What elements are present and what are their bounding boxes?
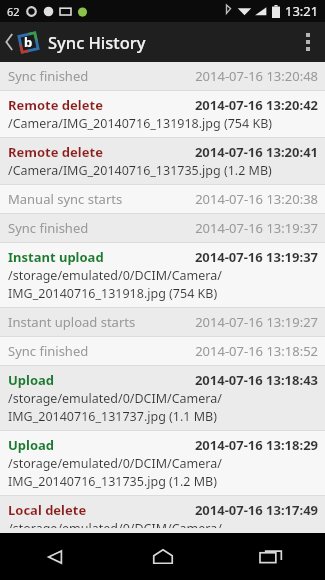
staticText: /storage/emulated/0/DCIM/Camera/: [8, 390, 222, 407]
staticText: 2014-07-16 13:17:49: [194, 501, 318, 519]
button[interactable]: Remote delete: [0, 138, 325, 184]
staticText: /storage/emulated/0/DCIM/Camera/: [8, 520, 222, 528]
staticText: /storage/emulated/0/DCIM/Camera/: [8, 267, 222, 284]
staticText: /Camera/IMG_20140716_131735.jpg (1.2 MB): [8, 162, 272, 179]
staticText: Manual sync starts: [8, 190, 123, 208]
button[interactable]: Instant upload starts: [0, 308, 325, 336]
staticText: IMG_20140716_131737.jpg (1.1 MB): [8, 408, 217, 425]
staticText: IMG_20140716_131735.jpg (1.2 MB): [8, 473, 217, 490]
staticText: 2014-07-16 13:20:42: [194, 96, 318, 114]
staticText: Sync finished: [8, 342, 89, 360]
staticText: Upload: [8, 371, 55, 389]
button[interactable]: Sync finished: [0, 62, 325, 90]
staticText: Remote delete: [8, 143, 103, 161]
button[interactable]: Sync finished: [0, 214, 325, 242]
button[interactable]: Back: [0, 533, 109, 580]
button[interactable]: Recent apps: [217, 533, 325, 580]
staticText: 2014-07-16 13:18:43: [194, 371, 318, 389]
staticText: 2014-07-16 13:19:37: [195, 219, 318, 237]
button[interactable]: Sync finished: [0, 337, 325, 365]
staticText: IMG_20140716_131918.jpg (754 KB): [8, 285, 218, 302]
staticText: Sync finished: [8, 67, 89, 85]
staticText: Instant upload starts: [8, 313, 136, 331]
staticText: 2014-07-16 13:20:38: [195, 190, 318, 208]
button[interactable]: Local delete: [0, 496, 325, 533]
button[interactable]: Upload: [0, 366, 325, 430]
button[interactable]: More options: [291, 22, 325, 62]
staticText: /Camera/IMG_20140716_131918.jpg (754 KB): [8, 115, 273, 132]
staticText: Sync History: [48, 31, 146, 53]
button[interactable]: Navigate up: [0, 22, 152, 62]
staticText: Instant upload: [8, 248, 104, 266]
staticText: 2014-07-16 13:19:27: [195, 313, 318, 331]
button[interactable]: Instant upload: [0, 243, 325, 307]
staticText: 2014-07-16 13:20:48: [195, 67, 318, 85]
staticText: 13:21: [285, 2, 319, 20]
staticText: 2014-07-16 13:20:41: [194, 143, 318, 161]
staticText: 2014-07-16 13:18:29: [194, 436, 318, 454]
staticText: 2014-07-16 13:19:37: [194, 248, 318, 266]
staticText: b: [24, 33, 33, 51]
button[interactable]: Manual sync starts: [0, 185, 325, 213]
staticText: Local delete: [8, 501, 87, 519]
staticText: /storage/emulated/0/DCIM/Camera/: [8, 455, 222, 472]
button[interactable]: Home: [109, 533, 217, 580]
staticText: 62: [7, 4, 20, 19]
button[interactable]: Remote delete: [0, 91, 325, 137]
staticText: Sync finished: [8, 219, 89, 237]
button[interactable]: Upload: [0, 431, 325, 495]
staticText: Remote delete: [8, 96, 103, 114]
staticText: 2014-07-16 13:18:52: [195, 342, 318, 360]
staticText: Upload: [8, 436, 55, 454]
